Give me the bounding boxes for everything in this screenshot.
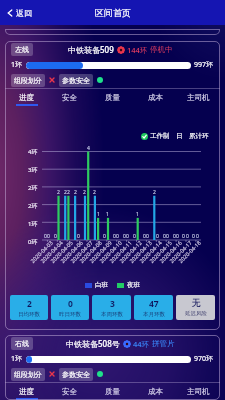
staticText: 0 xyxy=(182,233,185,240)
staticText: 2020-04-18 xyxy=(177,239,202,264)
staticText: 44环 xyxy=(133,339,150,349)
staticText: 0 xyxy=(54,233,57,240)
staticText: 3 xyxy=(110,298,115,310)
staticText: 无 xyxy=(192,298,201,309)
button[interactable]: 无 xyxy=(176,295,215,320)
staticText: 主司机 xyxy=(187,93,210,102)
staticText: 中铁装备508号 xyxy=(66,338,120,349)
staticText: 0 xyxy=(77,233,80,240)
staticText: 成本 xyxy=(148,93,163,102)
button[interactable]: 组段划分 xyxy=(11,368,45,381)
staticText: 0 xyxy=(196,233,199,240)
staticText: 0 xyxy=(44,233,47,240)
staticText: 主司机 xyxy=(187,387,210,396)
staticText: 质量 xyxy=(105,387,120,396)
staticText: 0 xyxy=(186,233,189,240)
staticText: 夜班 xyxy=(127,281,140,289)
button[interactable]: 主司机 xyxy=(177,89,220,106)
staticText: 0 xyxy=(192,233,195,240)
staticText: 0 xyxy=(126,233,129,240)
button[interactable]: 进度 xyxy=(5,89,48,106)
staticText: 1环 xyxy=(11,60,23,70)
staticText: 2020-04-13 xyxy=(128,239,153,264)
staticText: 组段划分 xyxy=(14,76,42,85)
staticText: 997环 xyxy=(194,60,214,70)
staticText: 安全 xyxy=(62,93,77,102)
button[interactable]: 主司机 xyxy=(177,383,220,400)
button[interactable]: 安全 xyxy=(48,89,91,106)
staticText: 返回 xyxy=(16,8,32,18)
staticText: 0 xyxy=(173,233,176,240)
staticText: 2020-04-05 xyxy=(49,239,74,264)
staticText: 右线 xyxy=(15,339,29,348)
staticText: 进度 xyxy=(19,93,34,102)
button[interactable]: 质量 xyxy=(91,89,134,106)
staticText: 0 xyxy=(163,233,166,240)
button[interactable]: 0 xyxy=(51,295,89,320)
staticText: 本月环数 xyxy=(143,311,165,318)
staticText: 2020-04-10 xyxy=(98,239,123,264)
button[interactable]: 成本 xyxy=(134,383,177,400)
staticText: 0环 xyxy=(28,238,38,246)
staticText: 进度 xyxy=(19,387,34,396)
staticText: 白班 xyxy=(95,281,108,289)
button[interactable]: 进度 xyxy=(5,383,48,400)
other: Work system xyxy=(141,133,148,140)
staticText: 中铁装备509 xyxy=(68,44,114,55)
staticText: 3环 xyxy=(28,166,38,174)
staticText: 2环 xyxy=(28,202,38,210)
staticText: 2环 xyxy=(28,184,38,192)
staticText: 0 xyxy=(133,233,136,240)
button[interactable]: 质量 xyxy=(91,383,134,400)
staticText: 2 xyxy=(153,189,156,196)
staticText: 0 xyxy=(113,233,116,240)
staticText: 0 xyxy=(116,233,119,240)
staticText: 2 xyxy=(27,298,32,310)
button[interactable]: 安全 xyxy=(48,383,91,400)
staticText: 970环 xyxy=(194,354,214,364)
staticText: 0 xyxy=(146,233,149,240)
staticText: 1 xyxy=(136,211,139,218)
button[interactable]: 参数安全 xyxy=(59,368,93,381)
staticText: 0 xyxy=(166,233,169,240)
button[interactable]: 左线 xyxy=(11,43,33,56)
staticText: 2 xyxy=(64,189,67,196)
staticText: 2020-04-12 xyxy=(118,239,143,264)
staticText: 累计环 xyxy=(189,132,209,140)
button[interactable]: 47 xyxy=(134,295,173,320)
staticText: 左线 xyxy=(15,45,29,54)
staticText: 1 xyxy=(106,211,109,218)
button[interactable]: 成本 xyxy=(134,89,177,106)
staticText: 2 xyxy=(57,189,60,196)
staticText: 工作制 xyxy=(150,132,170,140)
staticText: 144环 xyxy=(127,45,148,55)
staticText: 2020-04-08 xyxy=(78,239,103,264)
staticText: 0 xyxy=(176,233,179,240)
button[interactable]: 右线 xyxy=(11,337,33,350)
button[interactable]: 3 xyxy=(92,295,131,320)
button[interactable]: 组段划分 xyxy=(11,74,45,87)
staticText: 0 xyxy=(156,233,159,240)
staticText: 本周环数 xyxy=(101,311,123,318)
staticText: 2 xyxy=(93,189,96,196)
staticText: 1环 xyxy=(11,354,23,364)
staticText: 2020-04-17 xyxy=(168,239,193,264)
staticText: 质量 xyxy=(105,93,120,102)
staticText: 0 xyxy=(68,298,73,310)
staticText: 2020-04-06 xyxy=(59,239,84,264)
staticText: 0 xyxy=(143,233,146,240)
button[interactable]: 参数安全 xyxy=(59,74,93,87)
staticText: 区间首页 xyxy=(95,7,131,18)
staticText: 2020-04-14 xyxy=(138,239,163,264)
staticText: 参数安全 xyxy=(62,370,90,379)
button[interactable]: 2 xyxy=(10,295,48,320)
staticText: 2 xyxy=(67,189,70,196)
button[interactable]: 返回 xyxy=(4,5,35,21)
staticText: 延迟风险 xyxy=(185,310,207,317)
staticText: 2 xyxy=(74,189,77,196)
staticText: 日 xyxy=(176,132,183,140)
staticText: 组段划分 xyxy=(14,370,42,379)
staticText: 4环 xyxy=(28,148,38,156)
staticText: 1环 xyxy=(28,220,38,228)
staticText: 0 xyxy=(103,233,106,240)
